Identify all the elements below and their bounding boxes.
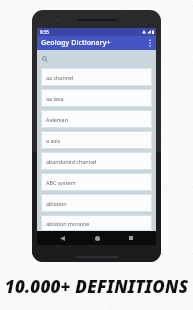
button[interactable]: aa lava [41, 89, 152, 107]
staticText: 10.000+ DEFINITIONS [0, 275, 193, 298]
button[interactable]: Aalenian [41, 110, 152, 128]
button[interactable]: ablation moraine [41, 215, 152, 231]
button[interactable]: Search [37, 50, 156, 68]
button[interactable]: ablation [41, 194, 152, 212]
button[interactable]: abandoned channel [41, 152, 152, 170]
button[interactable]: ABC system [41, 173, 152, 191]
button[interactable]: a axis [41, 131, 152, 149]
staticText: aa channel [46, 74, 74, 81]
staticText: abandoned channel [46, 158, 97, 165]
button[interactable]: More options [144, 36, 156, 50]
button[interactable]: Home [87, 231, 107, 245]
button[interactable]: Recent apps [121, 231, 141, 245]
staticText: ABC system [46, 179, 76, 186]
staticText: 9:35 [40, 29, 49, 35]
button[interactable]: aa channel [41, 68, 152, 86]
staticText: ablation moraine [46, 220, 90, 227]
staticText: aa lava [46, 95, 64, 102]
staticText: Geology Dictionary+ [41, 38, 111, 48]
staticText: a axis [46, 137, 61, 144]
staticText: Aalenian [46, 116, 68, 123]
staticText: ablation [46, 200, 67, 207]
button[interactable]: Back [52, 231, 72, 245]
